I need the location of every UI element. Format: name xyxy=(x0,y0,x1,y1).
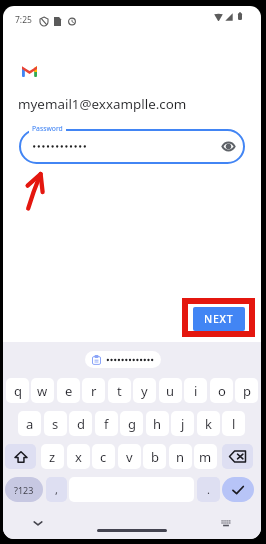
button[interactable]: . xyxy=(197,477,220,502)
button[interactable]: e xyxy=(57,378,80,403)
staticText: r xyxy=(91,382,97,400)
staticText: , xyxy=(55,482,58,497)
staticText: j xyxy=(181,415,185,433)
staticText: o xyxy=(218,382,226,400)
staticText: 7:25 xyxy=(15,14,32,26)
staticText: m xyxy=(199,448,212,466)
staticText: z xyxy=(49,448,56,466)
staticText: e xyxy=(65,382,73,400)
button[interactable]: , xyxy=(46,477,67,502)
staticText: b xyxy=(151,448,159,466)
staticText: n xyxy=(176,448,185,466)
staticText: myemail1@exxamplle.com xyxy=(18,95,187,113)
staticText: t xyxy=(117,382,122,400)
staticText: g xyxy=(128,415,136,433)
staticText: i xyxy=(194,382,198,400)
button[interactable]: g xyxy=(120,411,143,436)
button[interactable]: f xyxy=(95,411,118,436)
button[interactable]: p xyxy=(235,378,258,403)
button[interactable]: n xyxy=(169,444,192,469)
button[interactable] xyxy=(19,129,245,164)
staticText: s xyxy=(52,415,59,433)
button[interactable]: k xyxy=(197,411,220,436)
button[interactable] xyxy=(85,351,161,368)
staticText: . xyxy=(207,482,210,497)
button[interactable]: ?123 xyxy=(5,477,43,502)
staticText: u xyxy=(166,382,175,400)
button[interactable]: x xyxy=(67,444,90,469)
button[interactable]: b xyxy=(143,444,166,469)
button[interactable]: i xyxy=(184,378,207,403)
button[interactable]: c xyxy=(92,444,115,469)
staticText: ?123 xyxy=(14,484,34,496)
button[interactable]: h xyxy=(146,411,169,436)
staticText: x xyxy=(75,448,82,466)
staticText: a xyxy=(26,415,34,433)
staticText: Password xyxy=(32,124,63,133)
button[interactable]: Show password xyxy=(222,140,235,153)
button[interactable]: w xyxy=(31,378,54,403)
button[interactable]: m xyxy=(194,444,217,469)
button[interactable]: q xyxy=(6,378,29,403)
staticText: d xyxy=(77,415,85,433)
button[interactable]: Shift xyxy=(5,444,36,469)
staticText: y xyxy=(141,382,148,400)
staticText: k xyxy=(205,415,212,433)
button[interactable]: d xyxy=(69,411,92,436)
button[interactable]: s xyxy=(44,411,67,436)
button[interactable]: l xyxy=(222,411,245,436)
staticText: c xyxy=(100,448,107,466)
button[interactable]: j xyxy=(171,411,194,436)
staticText: v xyxy=(126,448,133,466)
button[interactable]: a xyxy=(18,411,41,436)
button[interactable]: NEXT xyxy=(193,307,245,331)
button[interactable]: Change keyboard xyxy=(217,516,235,531)
staticText: NEXT xyxy=(204,312,234,326)
staticText: p xyxy=(243,382,251,400)
button[interactable]: y xyxy=(133,378,156,403)
button[interactable]: Enter xyxy=(222,477,254,502)
button[interactable]: t xyxy=(108,378,131,403)
staticText: l xyxy=(232,415,236,433)
button[interactable]: Backspace xyxy=(222,444,253,469)
button[interactable]: z xyxy=(41,444,64,469)
button[interactable]: r xyxy=(82,378,105,403)
button[interactable]: o xyxy=(210,378,233,403)
staticText: w xyxy=(37,382,48,400)
button[interactable]: v xyxy=(118,444,141,469)
staticText: f xyxy=(104,415,109,433)
button[interactable]: Hide keyboard xyxy=(30,515,46,531)
button[interactable]: u xyxy=(159,378,182,403)
staticText: h xyxy=(153,415,162,433)
staticText: q xyxy=(14,382,22,400)
